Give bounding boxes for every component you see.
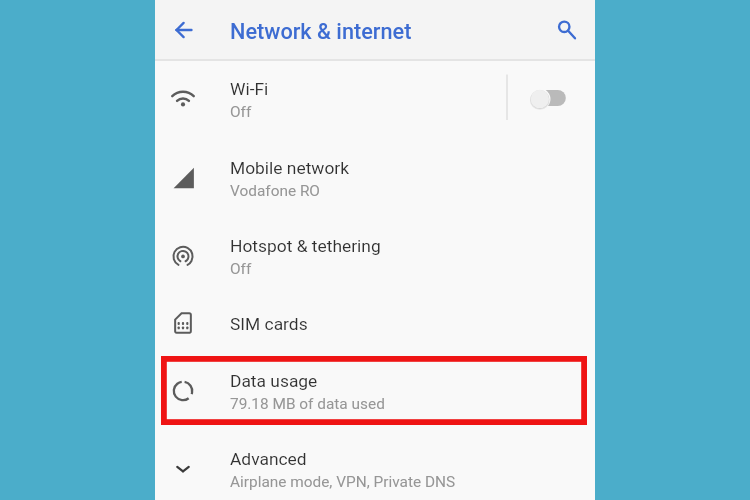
staticText: Wi-Fi	[230, 79, 269, 99]
staticText: SIM cards	[230, 314, 308, 334]
button[interactable]: Turn Wi-Fi on	[495, 59, 595, 138]
button[interactable]: Data usage	[155, 351, 595, 430]
staticText: Off	[230, 260, 252, 278]
staticText: Network & internet	[230, 19, 412, 44]
staticText: Mobile network	[230, 158, 350, 178]
button[interactable]: SIM cards	[155, 295, 595, 351]
button[interactable]: Search	[548, 11, 585, 48]
staticText: Airplane mode, VPN, Private DNS	[230, 473, 456, 491]
staticText: Data usage	[230, 371, 318, 391]
staticText: Off	[230, 103, 252, 121]
button[interactable]: Navigate up	[165, 11, 202, 48]
button[interactable]: Hotspot & tethering	[155, 216, 595, 295]
staticText: Vodafone RO	[230, 182, 320, 200]
button[interactable]: Mobile network	[155, 138, 595, 217]
staticText: Advanced	[230, 449, 307, 469]
button[interactable]: Wi-Fi	[155, 59, 595, 138]
button[interactable]: Advanced	[155, 429, 595, 500]
staticText: Hotspot & tethering	[230, 236, 381, 256]
staticText: 79.18 MB of data used	[230, 395, 385, 413]
